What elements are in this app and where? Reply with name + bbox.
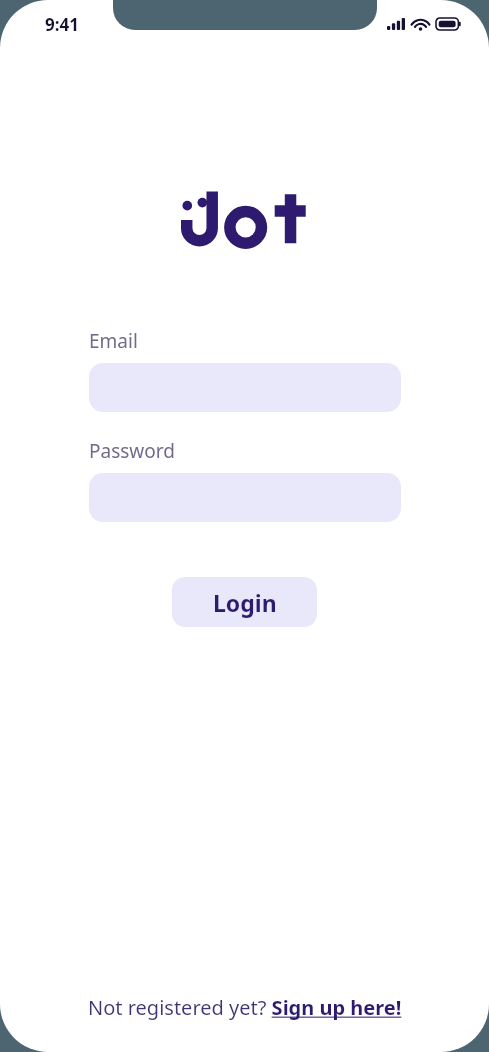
staticText: Password xyxy=(89,438,175,464)
staticText: Login xyxy=(213,587,277,618)
staticText: 9:41 xyxy=(45,13,79,36)
button[interactable]: Login xyxy=(172,577,317,627)
other: Jot xyxy=(179,188,311,250)
button[interactable]: Not registered yet? Sign up here! xyxy=(88,994,402,1021)
staticText: Email xyxy=(89,328,138,354)
staticText: Not registered yet? Sign up here! xyxy=(88,994,402,1021)
